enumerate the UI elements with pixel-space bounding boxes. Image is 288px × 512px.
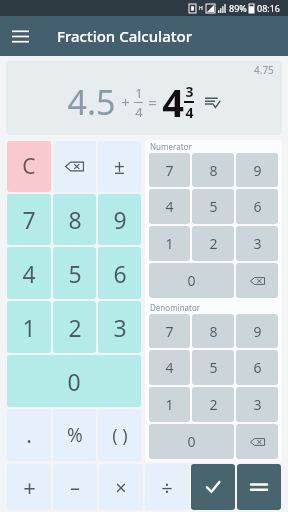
staticText: 8 — [68, 204, 82, 235]
staticText: 5 — [209, 358, 218, 377]
staticText: 1 — [22, 312, 36, 343]
staticText: 3 — [253, 234, 262, 253]
staticText: 2 — [209, 395, 218, 414]
staticText: 89% — [229, 2, 247, 14]
button[interactable]: Open navigation menu — [0, 16, 40, 56]
staticText: 4 — [22, 258, 36, 289]
button[interactable]: C — [7, 141, 51, 192]
button[interactable]: 7 — [7, 194, 51, 245]
staticText: 1 — [165, 234, 174, 253]
button[interactable]: 0 — [149, 424, 234, 459]
button[interactable]: 3 — [236, 226, 278, 261]
button[interactable]: 6 — [236, 350, 278, 385]
button[interactable]: 8 — [53, 194, 96, 245]
staticText: % — [67, 422, 83, 448]
staticText: ± — [114, 154, 125, 180]
button[interactable]: 1 — [149, 387, 190, 422]
button[interactable]: 2 — [53, 301, 96, 353]
staticText: ÷ — [161, 474, 173, 501]
button[interactable]: Equals — [237, 464, 281, 510]
staticText: 08:16 — [257, 2, 281, 14]
staticText: 4 — [185, 103, 194, 122]
staticText: 6 — [253, 358, 262, 377]
button[interactable]: Denominator backspace — [236, 424, 278, 459]
button[interactable]: Backspace — [53, 141, 96, 192]
staticText: 0 — [187, 432, 196, 451]
staticText: 3 — [113, 312, 127, 343]
staticText: H — [199, 5, 203, 12]
button[interactable]: 3 — [98, 301, 141, 353]
button[interactable]: % — [53, 409, 96, 461]
staticText: Numerator — [150, 141, 192, 152]
button[interactable]: 8 — [192, 314, 234, 348]
button[interactable]: 0 — [149, 263, 234, 298]
staticText: 9 — [253, 161, 262, 180]
button[interactable]: 1 — [7, 301, 51, 353]
staticText: ( ) — [112, 423, 128, 448]
staticText: 5 — [209, 197, 218, 216]
button[interactable]: 4 — [7, 247, 51, 299]
button[interactable]: ( ) — [98, 409, 141, 461]
staticText: 5 — [68, 258, 82, 289]
staticText: = — [148, 92, 157, 112]
staticText: . — [26, 421, 32, 450]
button[interactable]: 9 — [236, 153, 278, 187]
staticText: C — [22, 152, 36, 181]
staticText: 8 — [209, 161, 218, 180]
button[interactable]: 4.75 — [6, 61, 282, 135]
button[interactable]: ± — [98, 141, 141, 192]
staticText: 6 — [253, 197, 262, 216]
staticText: + — [23, 472, 36, 502]
button[interactable]: 4 — [149, 350, 190, 385]
staticText: 4.5 — [67, 79, 116, 125]
staticText: 7 — [165, 161, 174, 180]
staticText: Denominator — [150, 302, 201, 313]
staticText: 4 — [165, 358, 174, 377]
staticText: – — [70, 474, 80, 501]
staticText: 0 — [67, 366, 81, 397]
button[interactable]: Numerator backspace — [236, 263, 278, 298]
staticText: 6 — [113, 258, 127, 289]
staticText: 7 — [165, 322, 174, 341]
button[interactable]: ÷ — [145, 464, 189, 510]
staticText: 8 — [209, 322, 218, 341]
button[interactable]: 5 — [192, 350, 234, 385]
staticText: 1 — [165, 395, 174, 414]
staticText: 4 — [165, 197, 174, 216]
staticText: Fraction Calculator — [57, 26, 192, 46]
button[interactable]: 6 — [236, 189, 278, 224]
staticText: 1 — [135, 84, 143, 102]
staticText: 4.75 — [254, 63, 274, 77]
staticText: × — [115, 474, 127, 501]
button[interactable]: 7 — [149, 153, 190, 187]
button[interactable]: × — [99, 464, 143, 510]
button[interactable]: 6 — [98, 247, 141, 299]
button[interactable]: History — [202, 92, 222, 112]
button[interactable]: 2 — [192, 387, 234, 422]
button[interactable]: 2 — [192, 226, 234, 261]
staticText: 4 — [162, 76, 184, 128]
staticText: + — [121, 92, 130, 112]
button[interactable]: 9 — [98, 194, 141, 245]
staticText: 3 — [253, 395, 262, 414]
button[interactable]: 8 — [192, 153, 234, 187]
button[interactable]: 9 — [236, 314, 278, 348]
button[interactable]: 4 — [149, 189, 190, 224]
button[interactable]: + — [7, 464, 51, 510]
button[interactable]: 5 — [192, 189, 234, 224]
button[interactable]: . — [7, 409, 51, 461]
button[interactable]: 1 — [149, 226, 190, 261]
staticText: 2 — [68, 312, 82, 343]
button[interactable]: – — [53, 464, 97, 510]
staticText: 7 — [22, 204, 36, 235]
staticText: 4 — [135, 103, 143, 121]
button[interactable]: 0 — [7, 355, 141, 407]
button[interactable]: Confirm — [191, 464, 235, 510]
button[interactable]: 3 — [236, 387, 278, 422]
button[interactable]: 5 — [53, 247, 96, 299]
staticText: 2 — [209, 234, 218, 253]
button[interactable]: 7 — [149, 314, 190, 348]
staticText: 9 — [113, 204, 127, 235]
staticText: 9 — [253, 322, 262, 341]
staticText: 0 — [187, 271, 196, 290]
